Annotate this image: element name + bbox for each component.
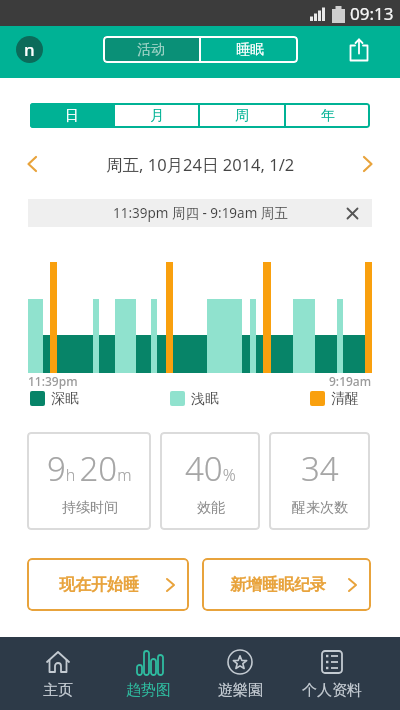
button[interactable]: 年 bbox=[286, 103, 370, 128]
button[interactable]: 34 bbox=[269, 432, 370, 530]
button[interactable]: 日 bbox=[30, 103, 113, 128]
button[interactable] bbox=[342, 203, 362, 223]
staticText: 11:39pm bbox=[28, 373, 78, 389]
staticText: 个人资料 bbox=[302, 681, 362, 700]
button[interactable] bbox=[20, 152, 44, 176]
button[interactable]: 月 bbox=[115, 103, 198, 128]
staticText: 主页 bbox=[43, 681, 73, 700]
button[interactable]: 活动 bbox=[103, 36, 199, 63]
staticText: 周 bbox=[235, 107, 249, 125]
button[interactable]: 趋势图 bbox=[103, 637, 194, 710]
button[interactable]: 睡眠 bbox=[201, 36, 298, 63]
staticText: 34 bbox=[301, 446, 339, 491]
button[interactable]: 遊樂園 bbox=[194, 637, 286, 710]
staticText: 遊樂園 bbox=[218, 681, 263, 700]
staticText: n bbox=[24, 38, 35, 61]
staticText: 深眠 bbox=[51, 390, 79, 406]
button[interactable]: 主页 bbox=[12, 637, 103, 710]
staticText: 09:13 bbox=[350, 2, 394, 25]
staticText: 9:19am bbox=[329, 373, 372, 389]
staticText: 周五, 10月24日 2014, 1/2 bbox=[106, 153, 295, 176]
button[interactable]: 现在开始睡 bbox=[27, 558, 189, 611]
staticText: 醒来次数 bbox=[292, 499, 348, 517]
staticText: 11:39pm 周四 - 9:19am 周五 bbox=[113, 204, 288, 222]
staticText: 年 bbox=[321, 107, 335, 125]
staticText: 趋势图 bbox=[126, 681, 171, 700]
button[interactable] bbox=[356, 152, 380, 176]
staticText: 40% bbox=[185, 446, 236, 491]
staticText: 9h 20m bbox=[47, 446, 132, 491]
button[interactable]: 周 bbox=[200, 103, 284, 128]
staticText: 月 bbox=[150, 107, 164, 125]
staticText: 日 bbox=[65, 107, 79, 125]
button[interactable]: 新增睡眠纪录 bbox=[202, 558, 371, 611]
staticText: 浅眠 bbox=[191, 390, 219, 406]
button[interactable]: n bbox=[16, 36, 43, 63]
staticText: 持续时间 bbox=[62, 499, 118, 517]
staticText: 睡眠 bbox=[236, 41, 264, 59]
staticText: 新增睡眠纪录 bbox=[230, 575, 326, 595]
staticText: 现在开始睡 bbox=[59, 575, 139, 595]
staticText: 活动 bbox=[137, 41, 165, 59]
staticText: 效能 bbox=[197, 499, 225, 517]
staticText: 清醒 bbox=[331, 390, 359, 406]
button[interactable] bbox=[346, 37, 372, 63]
button[interactable]: 9h 20m bbox=[27, 432, 151, 530]
button[interactable]: 个人资料 bbox=[286, 637, 378, 710]
button[interactable]: 40% bbox=[160, 432, 260, 530]
